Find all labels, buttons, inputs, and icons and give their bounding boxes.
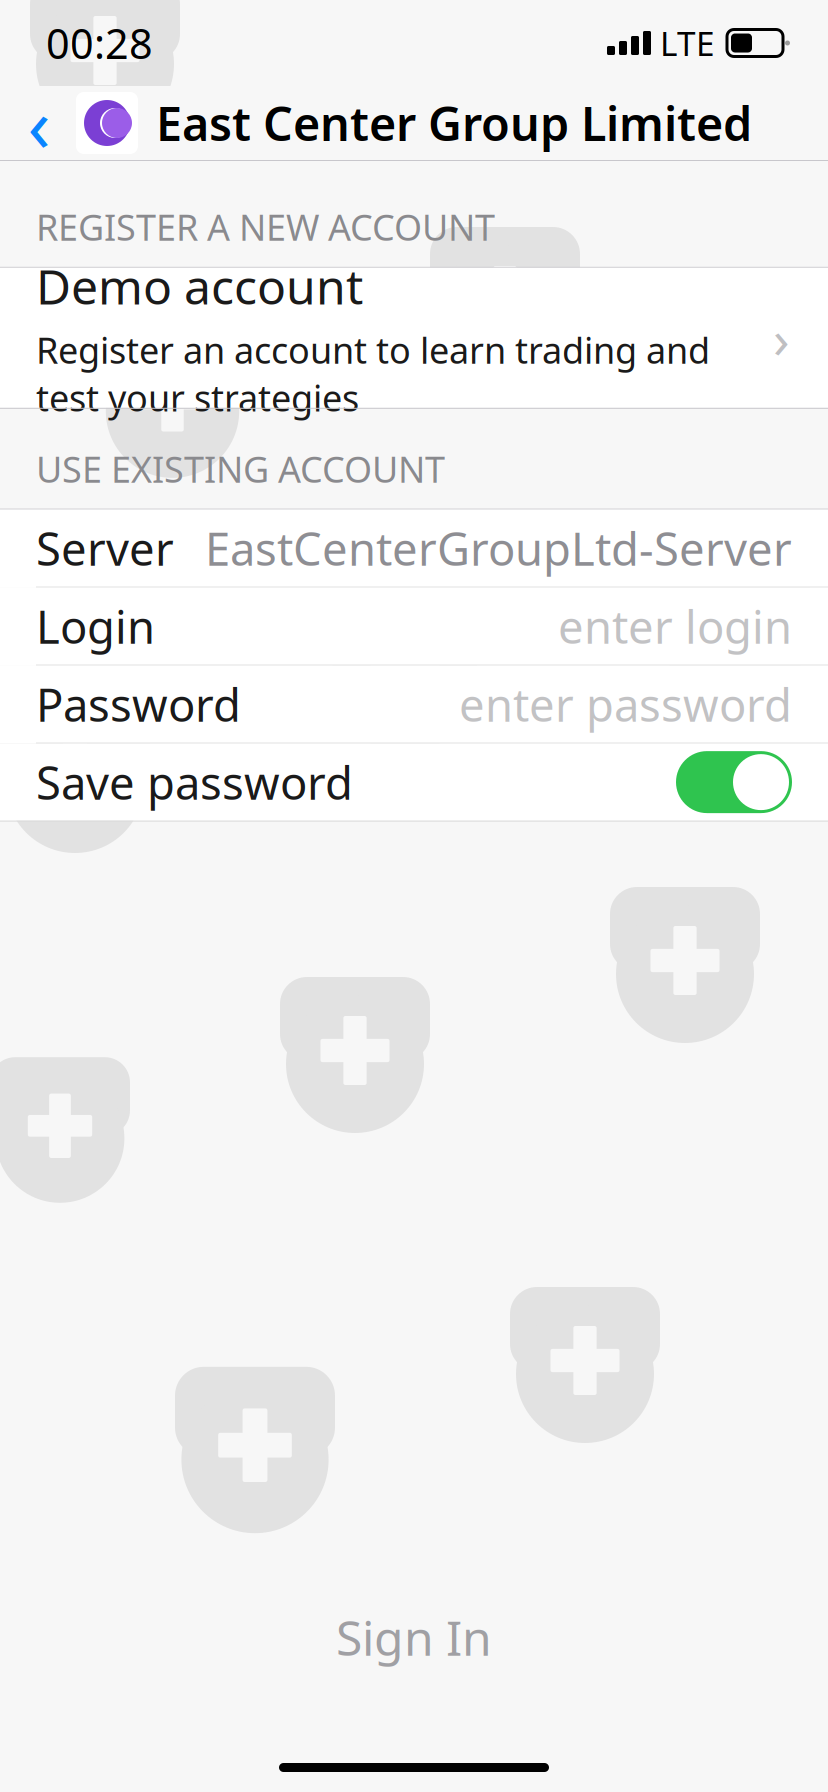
staticText: Login [36, 596, 155, 656]
staticText: USE EXISTING ACCOUNT [36, 445, 445, 493]
staticText: Save password [36, 752, 353, 812]
staticText: enter password [459, 674, 792, 734]
staticText: East Center Group Limited [156, 92, 752, 154]
staticText: Register an account to learn trading and… [36, 326, 710, 421]
staticText: enter login [558, 596, 792, 656]
staticText: Password [36, 674, 241, 734]
staticText: Server [36, 518, 174, 578]
button[interactable]: Sign In [0, 1583, 828, 1691]
staticText: 00:28 [46, 16, 153, 70]
button[interactable]: Password [0, 666, 828, 744]
button[interactable]: Login [0, 588, 828, 666]
button[interactable]: Server [0, 510, 828, 588]
staticText: LTE [660, 21, 715, 65]
button[interactable]: Back [0, 84, 78, 162]
button[interactable]: Save password [0, 744, 828, 821]
staticText: Demo account [36, 254, 363, 318]
button[interactable]: Demo account [0, 268, 828, 408]
staticText: REGISTER A NEW ACCOUNT [36, 203, 495, 251]
staticText: ‹ [27, 73, 50, 173]
staticText: EastCenterGroupLtd-Server [205, 518, 792, 578]
staticText: › [773, 302, 790, 373]
staticText: Sign In [336, 1605, 492, 1669]
